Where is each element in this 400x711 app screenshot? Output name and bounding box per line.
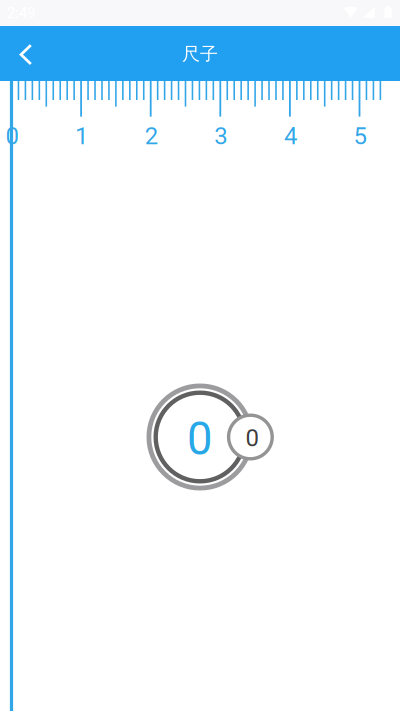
staticText: 2 [145,122,158,150]
staticText: 4 [284,122,297,150]
button[interactable]: Back [5,34,47,74]
staticText: 0 [187,412,212,465]
staticText: 尺子 [182,43,218,65]
button[interactable]: Fraction, 0 [227,413,274,460]
button[interactable]: Measured length, 0 [146,383,253,490]
staticText: 3 [214,122,227,150]
staticText: 1 [75,122,88,150]
staticText: 0 [245,424,258,452]
staticText: 0 [5,122,18,150]
staticText: 5 [353,122,366,150]
